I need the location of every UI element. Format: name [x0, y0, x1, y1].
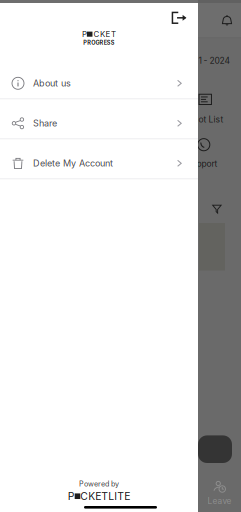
button[interactable]: Share: [0, 108, 198, 138]
staticText: P: [68, 490, 75, 502]
button[interactable]: Delete My Account: [0, 148, 198, 178]
staticText: Delete My Account: [33, 158, 113, 169]
staticText: pport: [196, 158, 217, 169]
staticText: Share: [33, 118, 57, 129]
staticText: 1 - 2024: [198, 55, 230, 66]
staticText: CKET: [93, 29, 116, 39]
staticText: Powered by: [79, 480, 119, 488]
button[interactable]: Notifications: [221, 14, 241, 26]
staticText: About us: [33, 78, 71, 89]
staticText: Leave: [207, 496, 231, 506]
button[interactable]: Log out: [171, 3, 198, 27]
staticText: P: [82, 29, 87, 39]
button[interactable]: Leave: [198, 480, 241, 506]
staticText: ot List: [198, 114, 223, 124]
staticText: CKETLITE: [80, 490, 130, 502]
staticText: PROGRESS: [83, 39, 115, 46]
button[interactable]: About us: [0, 68, 198, 98]
